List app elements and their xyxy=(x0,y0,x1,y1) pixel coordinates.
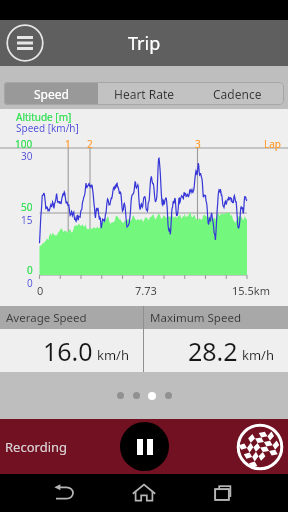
button[interactable]: Home xyxy=(124,474,164,512)
staticText: 28.2 xyxy=(188,334,238,368)
staticText: 1 xyxy=(65,137,71,151)
staticText: Altitude [m] xyxy=(16,110,72,124)
staticText: 50 xyxy=(21,200,33,214)
button[interactable]: Back xyxy=(44,474,84,512)
button[interactable]: Heart Rate xyxy=(98,82,191,105)
staticText: Recording xyxy=(5,438,68,456)
staticText: 30 xyxy=(21,149,33,163)
staticText: Speed xyxy=(34,86,69,102)
staticText: 2 xyxy=(87,137,93,151)
staticText: 15.5km xyxy=(232,283,270,298)
staticText: Speed [km/h] xyxy=(16,121,79,135)
staticText: Cadence xyxy=(213,86,262,102)
button[interactable]: Average Speed xyxy=(0,306,143,372)
staticText: 100 xyxy=(15,137,33,151)
button[interactable]: Cadence xyxy=(191,82,284,105)
staticText: 16.0 xyxy=(43,334,93,368)
button[interactable]: Speed xyxy=(4,82,98,105)
button[interactable]: Finish trip xyxy=(236,423,284,471)
button[interactable]: Pause recording xyxy=(120,422,169,471)
button[interactable]: Maximum Speed xyxy=(144,306,288,372)
staticText: 7.73 xyxy=(135,283,157,298)
staticText: 15 xyxy=(21,213,33,227)
staticText: 3 xyxy=(195,137,201,151)
staticText: 0 xyxy=(27,263,33,277)
staticText: Maximum Speed xyxy=(150,310,241,326)
staticText: km/h xyxy=(97,346,129,364)
button[interactable]: Open navigation menu xyxy=(6,24,44,62)
staticText: 0 xyxy=(27,276,33,290)
staticText: Heart Rate xyxy=(114,86,175,102)
button[interactable]: Recent apps xyxy=(204,474,244,512)
staticText: 0 xyxy=(37,283,44,298)
staticText: km/h xyxy=(242,346,274,364)
staticText: Lap xyxy=(264,137,281,151)
staticText: Trip xyxy=(128,31,161,56)
staticText: Average Speed xyxy=(6,310,87,326)
